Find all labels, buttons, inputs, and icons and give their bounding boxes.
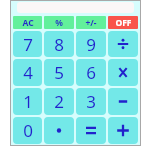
staticText: 8: [54, 33, 64, 56]
button[interactable]: OFF: [108, 16, 138, 29]
button[interactable]: Add: [108, 117, 138, 144]
button[interactable]: 0: [13, 117, 42, 144]
button[interactable]: 5: [44, 59, 74, 86]
button[interactable]: +/-: [76, 16, 106, 29]
button[interactable]: 4: [13, 59, 42, 86]
staticText: 2: [54, 90, 64, 113]
button[interactable]: 7: [13, 31, 42, 57]
staticText: 1: [23, 90, 33, 113]
staticText: 7: [23, 33, 33, 56]
button[interactable]: 1: [13, 88, 42, 115]
staticText: 0: [23, 119, 33, 142]
button[interactable]: Multiply: [108, 59, 138, 86]
button[interactable]: Decimal point: [44, 117, 74, 144]
button[interactable]: AC: [13, 16, 42, 29]
staticText: OFF: [115, 17, 132, 29]
staticText: 6: [86, 61, 96, 84]
button[interactable]: %: [44, 16, 74, 29]
button[interactable]: 3: [76, 88, 106, 115]
button[interactable]: Subtract: [108, 88, 138, 115]
button[interactable]: 9: [76, 31, 106, 57]
staticText: +/-: [85, 17, 97, 29]
staticText: 9: [86, 33, 96, 56]
button[interactable]: Divide: [108, 31, 138, 57]
staticText: AC: [22, 17, 34, 29]
staticText: %: [55, 17, 63, 29]
button[interactable]: 6: [76, 59, 106, 86]
staticText: 3: [86, 90, 96, 113]
button[interactable]: 8: [44, 31, 74, 57]
button[interactable]: 2: [44, 88, 74, 115]
staticText: 5: [54, 61, 64, 84]
staticText: 4: [23, 61, 33, 84]
button[interactable]: Equals: [76, 117, 106, 144]
